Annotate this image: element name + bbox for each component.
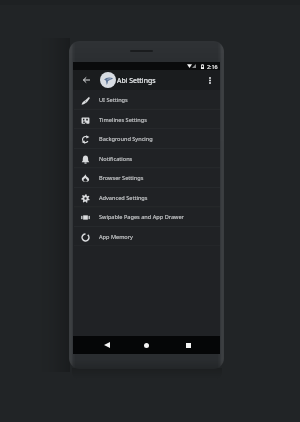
button[interactable]: Back <box>77 71 95 89</box>
button[interactable]: App Memory <box>73 227 220 247</box>
staticText: Timelines Settings <box>99 116 147 124</box>
staticText: App Memory <box>99 233 133 241</box>
button[interactable]: Browser Settings <box>73 168 220 188</box>
button[interactable]: Timelines Settings <box>73 110 220 130</box>
button[interactable]: UI Settings <box>73 90 220 110</box>
staticText: Swipable Pages and App Drawer <box>99 213 184 221</box>
staticText: Background Syncing <box>99 135 153 143</box>
staticText: Notifications <box>99 155 133 163</box>
button[interactable]: Advanced Settings <box>73 188 220 208</box>
button[interactable]: Recent apps <box>181 338 195 352</box>
button[interactable]: Notifications <box>73 149 220 169</box>
staticText: Advanced Settings <box>99 194 148 202</box>
staticText: UI Settings <box>99 96 128 104</box>
button[interactable]: Home <box>139 338 153 352</box>
button[interactable]: Background Syncing <box>73 129 220 149</box>
staticText: 2:16 <box>207 63 218 70</box>
staticText: Abi Settings <box>117 76 156 85</box>
staticText: Browser Settings <box>99 174 144 182</box>
button[interactable]: Swipable Pages and App Drawer <box>73 207 220 227</box>
button[interactable]: Back <box>100 338 114 352</box>
button[interactable]: More options <box>203 73 217 87</box>
